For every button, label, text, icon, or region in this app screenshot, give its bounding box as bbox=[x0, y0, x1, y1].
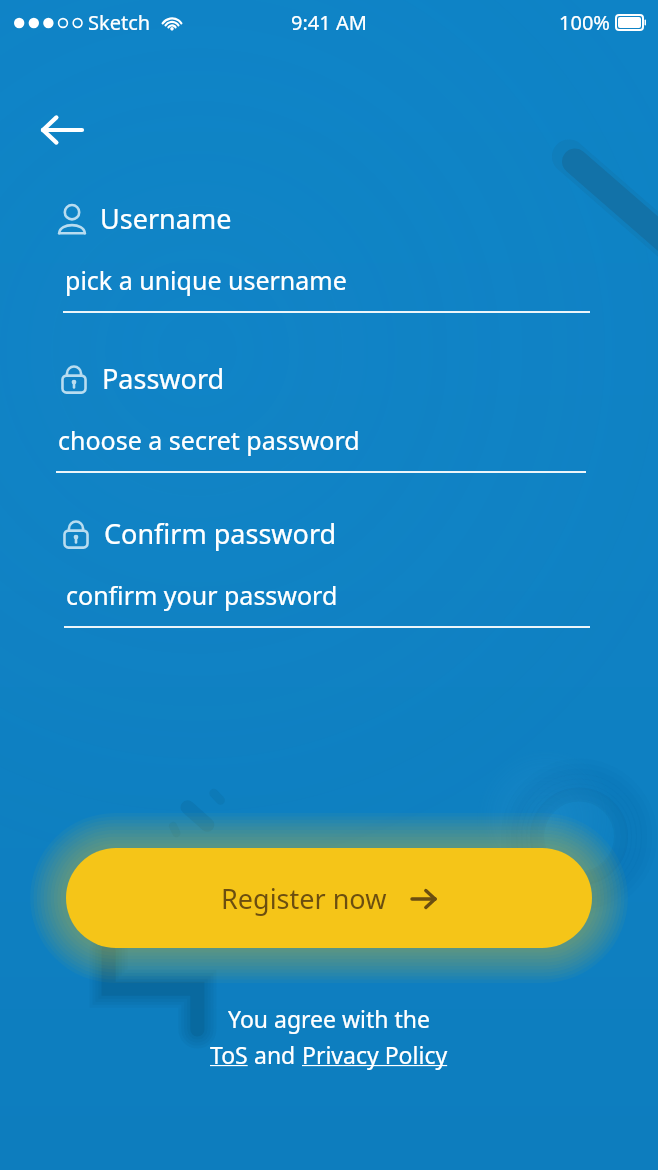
staticText: Confirm password bbox=[104, 515, 337, 552]
button[interactable]: Back bbox=[34, 102, 90, 158]
button[interactable]: choose a secret password bbox=[0, 423, 586, 473]
button[interactable]: confirm your password bbox=[0, 578, 590, 628]
button[interactable]: ToS bbox=[210, 1039, 248, 1070]
staticText: and bbox=[248, 1039, 302, 1070]
staticText: 9:41 AM bbox=[291, 9, 367, 36]
button[interactable]: Register now bbox=[66, 848, 592, 948]
staticText: confirm your password bbox=[66, 578, 338, 612]
staticText: Sketch bbox=[88, 9, 151, 36]
staticText: Password bbox=[102, 360, 225, 397]
staticText: Privacy Policy bbox=[302, 1039, 448, 1070]
staticText: Username bbox=[100, 200, 232, 237]
staticText: ToS bbox=[210, 1039, 248, 1070]
button[interactable]: Privacy Policy bbox=[302, 1039, 448, 1070]
button[interactable]: pick a unique username bbox=[0, 263, 590, 313]
staticText: 100% bbox=[559, 9, 610, 36]
staticText: Register now bbox=[221, 880, 387, 917]
staticText: You agree with the bbox=[228, 1003, 430, 1034]
staticText: pick a unique username bbox=[65, 263, 347, 297]
staticText: choose a secret password bbox=[58, 423, 360, 457]
